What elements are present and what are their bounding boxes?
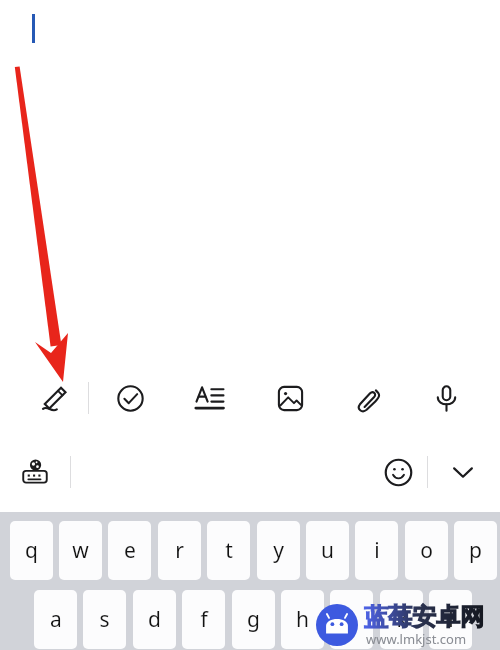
button[interactable]: Handwriting (29, 372, 81, 424)
staticText: www.lmkjst.com (366, 630, 467, 648)
button[interactable]: Insert picture (264, 372, 316, 424)
button[interactable]: a (34, 590, 77, 649)
button[interactable]: h (281, 590, 324, 649)
button[interactable]: p (454, 521, 497, 580)
button[interactable]: j (330, 590, 373, 649)
button[interactable]: Formatting (183, 372, 235, 424)
button[interactable]: Emoji (375, 449, 421, 495)
staticText: s (99, 605, 110, 634)
staticText: e (124, 536, 136, 565)
button[interactable]: u (306, 521, 349, 580)
button[interactable]: r (158, 521, 201, 580)
staticText: 蓝莓安卓网 (364, 602, 484, 632)
button[interactable]: k (380, 590, 423, 649)
staticText: y (273, 536, 284, 565)
button[interactable]: Hide keyboard (440, 449, 486, 495)
button[interactable]: e (108, 521, 151, 580)
button[interactable]: i (355, 521, 398, 580)
button[interactable]: g (232, 590, 275, 649)
button[interactable]: Voice input (420, 372, 472, 424)
staticText: d (148, 605, 161, 634)
staticText: l (448, 605, 454, 634)
staticText: w (72, 536, 89, 565)
button[interactable]: q (10, 521, 53, 580)
staticText: o (420, 536, 433, 565)
button[interactable]: o (405, 521, 448, 580)
button[interactable]: w (59, 521, 102, 580)
button[interactable]: Attach file (343, 372, 395, 424)
button[interactable]: l (429, 590, 472, 649)
staticText: u (321, 536, 334, 565)
button[interactable]: y (257, 521, 300, 580)
staticText: j (349, 605, 355, 634)
button[interactable]: d (133, 590, 176, 649)
button[interactable]: f (182, 590, 225, 649)
button[interactable]: Mark as done (104, 372, 156, 424)
staticText: i (374, 536, 380, 565)
staticText: a (50, 605, 62, 634)
button[interactable]: s (83, 590, 126, 649)
staticText: p (469, 536, 482, 565)
staticText: t (225, 536, 233, 565)
staticText: f (200, 605, 208, 634)
button[interactable]: Switch keyboard (12, 449, 58, 495)
staticText: g (247, 605, 260, 634)
staticText: q (25, 536, 38, 565)
button[interactable]: t (207, 521, 250, 580)
staticText: r (175, 536, 184, 565)
staticText: k (396, 605, 408, 634)
staticText: h (296, 605, 309, 634)
